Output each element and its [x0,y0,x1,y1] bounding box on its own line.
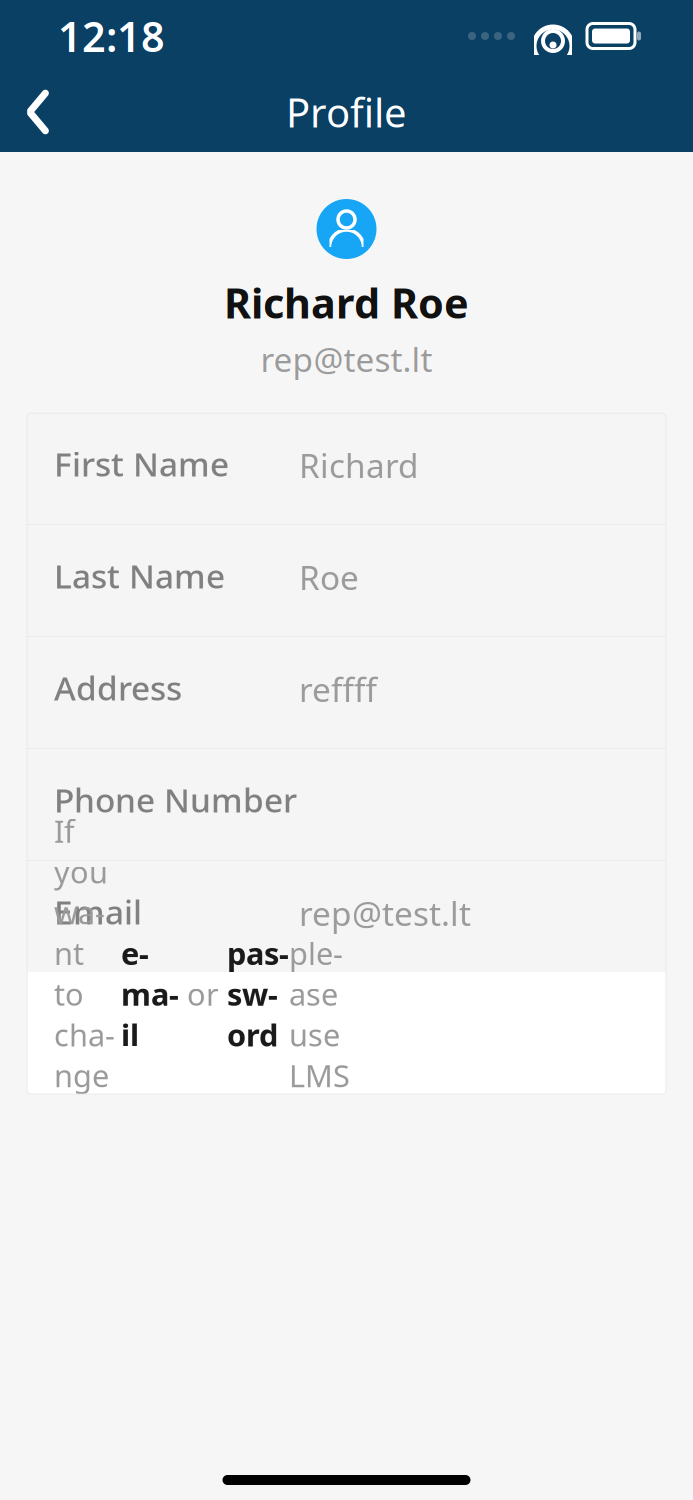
button[interactable]: Address [27,637,666,748]
button[interactable]: Back [0,72,76,152]
button[interactable]: Phone Number [27,749,666,860]
staticText: rep@test.lt [299,891,471,935]
staticText: Phone Number [54,777,297,822]
button[interactable]: Last Name [27,525,666,636]
staticText: or [179,973,227,1014]
staticText: rep@test.lt [260,337,432,381]
staticText: First Name [54,441,229,486]
staticText: If you want to change your [54,810,121,1177]
staticText: Richard [299,443,419,487]
staticText: reffff [299,667,377,711]
button[interactable]: Email [27,861,666,972]
staticText: Profile [286,85,407,138]
staticText: password [227,933,289,1055]
button[interactable]: First Name [27,413,666,524]
staticText: e-mail [121,933,179,1055]
staticText: Email [54,889,142,934]
staticText: Roe [299,555,359,599]
staticText: 12:18 [58,9,165,63]
staticText: Address [54,665,182,710]
staticText: Last Name [54,553,225,598]
staticText: Richard Roe [224,275,469,330]
staticText: please use LMS [289,892,350,1096]
